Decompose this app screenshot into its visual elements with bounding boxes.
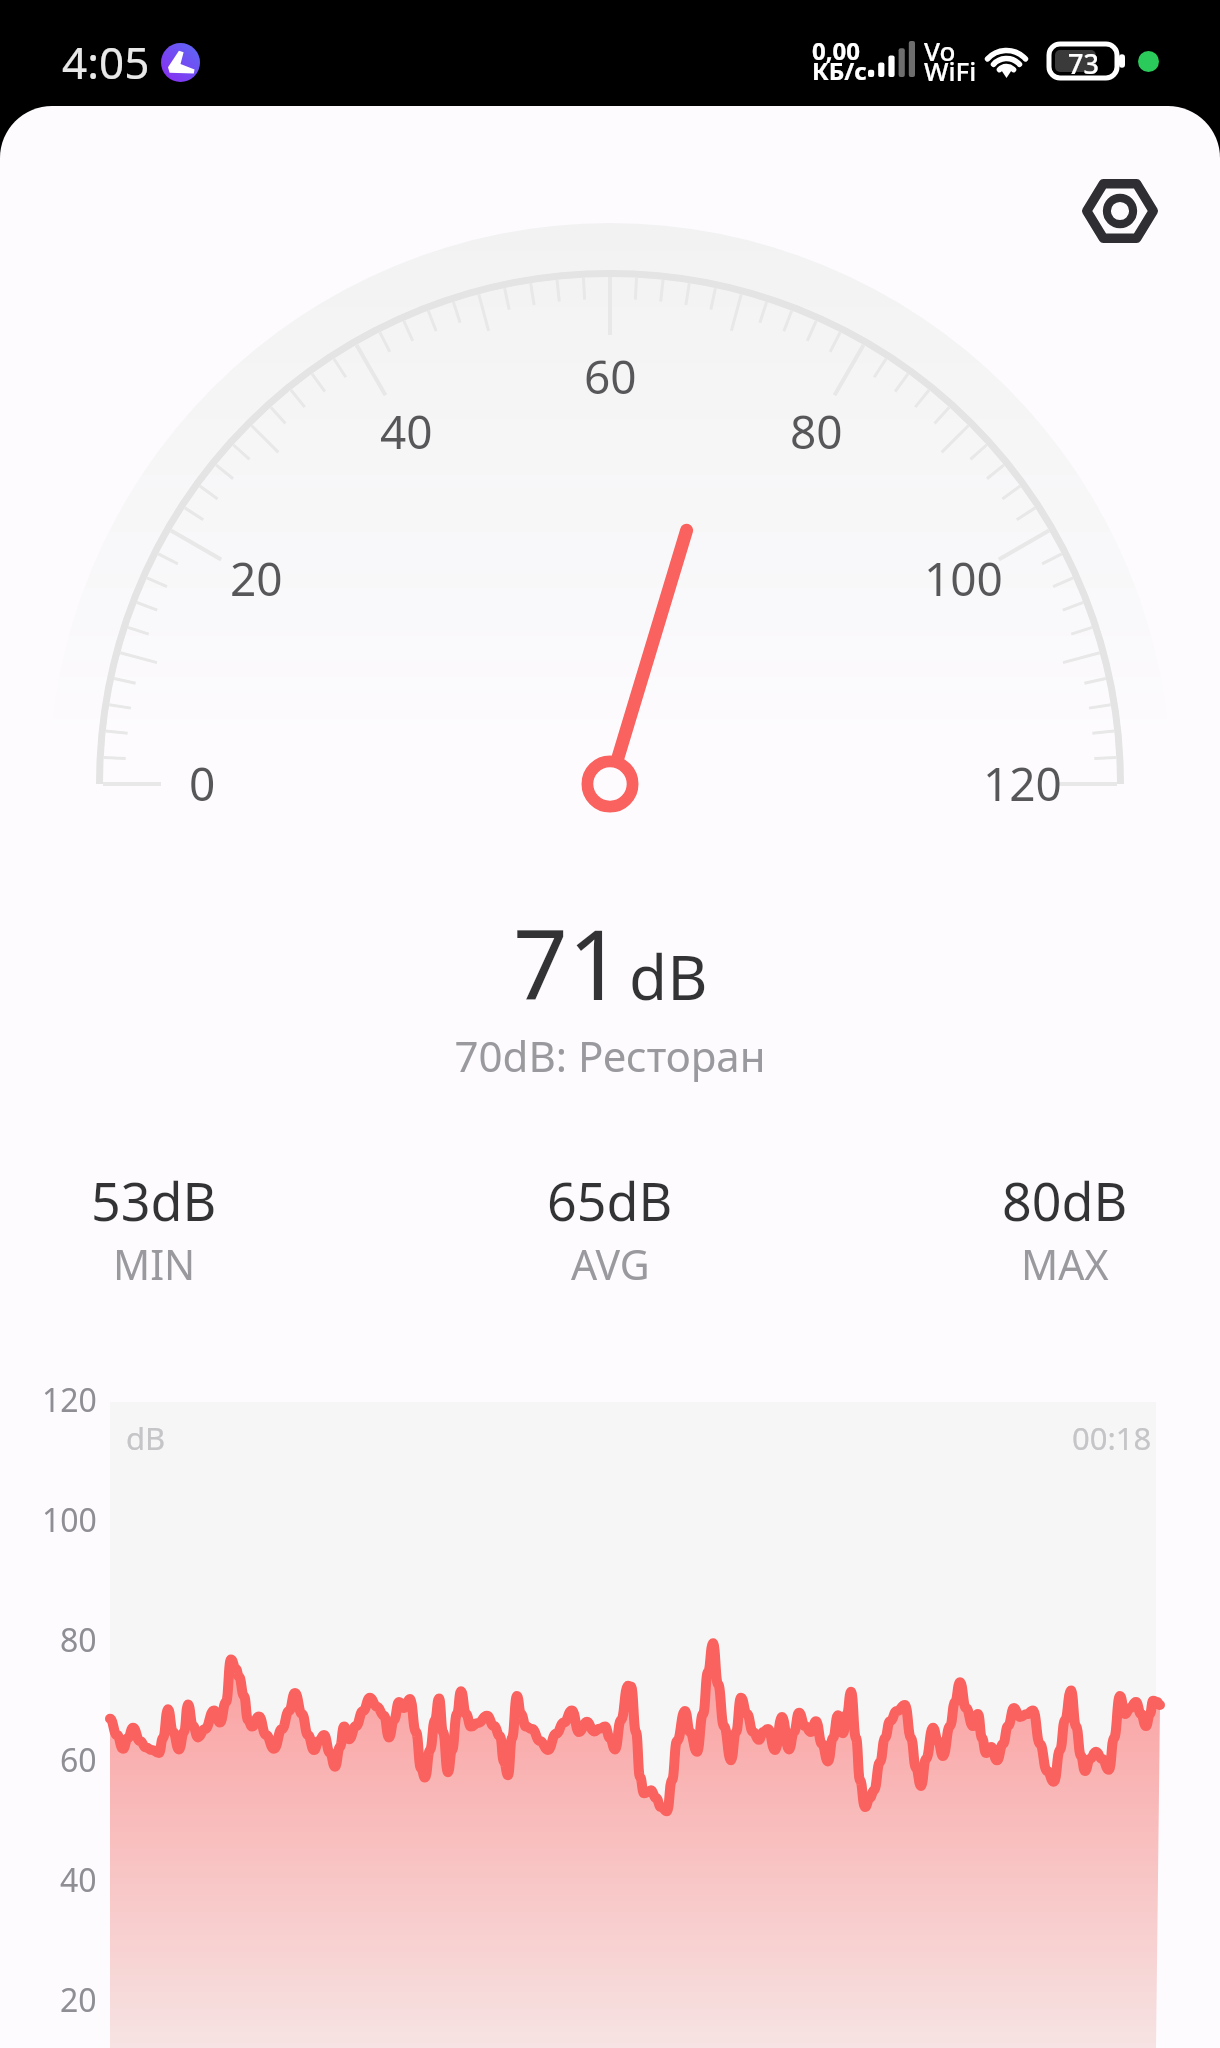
staticText: 40	[380, 400, 433, 463]
staticText: dB	[629, 934, 708, 1018]
staticText: 71	[513, 897, 623, 1028]
staticText: 0	[189, 752, 216, 815]
staticText: 80dB	[1002, 1165, 1128, 1236]
staticText: MIN	[113, 1236, 196, 1292]
staticText: 70dB: Ресторан	[0, 1027, 1220, 1084]
staticText: 80	[60, 1618, 97, 1662]
staticText: 100	[42, 1498, 97, 1542]
staticText: 4:05	[62, 32, 150, 92]
staticText: Vo	[924, 33, 956, 68]
staticText: 65dB	[547, 1165, 673, 1236]
staticText: 60	[584, 345, 637, 408]
staticText: MAX	[1021, 1236, 1109, 1292]
staticText: 53dB	[91, 1165, 217, 1236]
staticText: 40	[60, 1858, 97, 1902]
staticText: 20	[230, 547, 283, 610]
staticText: 120	[983, 752, 1062, 815]
staticText: 73	[1068, 45, 1099, 82]
staticText: КБ/с	[812, 54, 867, 87]
staticText: 100	[924, 547, 1003, 610]
staticText: 20	[60, 1978, 97, 2022]
button[interactable]: Settings	[1074, 165, 1166, 257]
staticText: 120	[42, 1378, 97, 1422]
staticText: AVG	[571, 1236, 650, 1292]
staticText: dB	[126, 1417, 166, 1459]
staticText: 0,00	[812, 34, 861, 67]
staticText: WiFi	[924, 53, 977, 88]
staticText: 60	[60, 1738, 97, 1782]
staticText: 00:18	[1072, 1417, 1152, 1459]
staticText: 80	[790, 400, 843, 463]
